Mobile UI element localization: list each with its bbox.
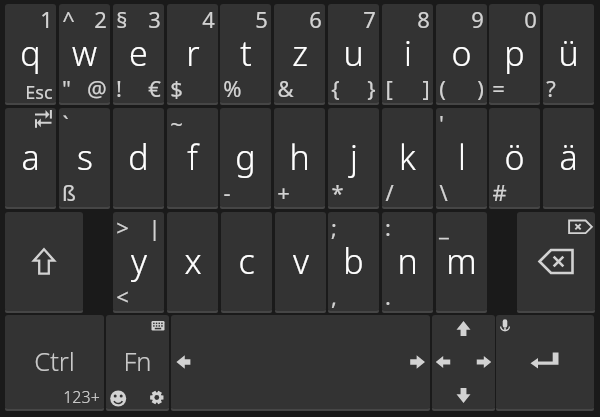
staticText: l	[458, 134, 466, 180]
button[interactable]: ü	[543, 4, 594, 103]
button[interactable]: k	[382, 108, 433, 207]
button[interactable]: Space	[171, 315, 430, 409]
button[interactable]: b	[328, 212, 379, 311]
staticText: .	[385, 281, 391, 311]
staticText: Esc	[25, 80, 53, 103]
staticText: *	[331, 177, 344, 207]
staticText: 3	[148, 4, 161, 34]
staticText: %	[223, 73, 242, 103]
staticText: -	[223, 177, 231, 207]
button[interactable]: n	[382, 212, 433, 311]
button[interactable]: s	[59, 108, 110, 207]
staticText: \	[439, 177, 448, 207]
staticText: t	[240, 30, 252, 76]
button[interactable]: y	[113, 212, 164, 311]
button[interactable]: t	[220, 4, 271, 103]
staticText: Fn	[123, 344, 152, 379]
button[interactable]: f	[167, 108, 218, 207]
staticText: q	[20, 30, 41, 76]
staticText: g	[235, 134, 256, 180]
staticText: y	[131, 238, 147, 284]
staticText: _	[439, 212, 449, 242]
staticText: x	[184, 238, 202, 284]
button[interactable]: h	[274, 108, 325, 207]
staticText: +	[277, 177, 290, 207]
staticText: 123+	[63, 386, 100, 408]
staticText: {	[331, 73, 340, 103]
staticText: h	[289, 134, 310, 180]
staticText: ;	[331, 212, 337, 242]
staticText: §	[116, 4, 128, 34]
button[interactable]: c	[221, 212, 272, 311]
staticText: ~	[170, 108, 183, 138]
staticText: w	[72, 30, 97, 76]
staticText: k	[399, 134, 416, 180]
staticText: ü	[558, 30, 579, 76]
staticText: ?	[546, 73, 556, 103]
button[interactable]: Ctrl	[5, 315, 104, 409]
button[interactable]: g	[220, 108, 271, 207]
staticText: 1	[40, 4, 53, 34]
staticText: €	[148, 73, 161, 103]
staticText: 5	[255, 4, 268, 34]
staticText: v	[293, 238, 309, 284]
button[interactable]: q	[5, 4, 56, 103]
button[interactable]: z	[274, 4, 325, 103]
staticText: b	[343, 238, 364, 284]
button[interactable]: i	[382, 4, 433, 103]
button[interactable]: e	[113, 4, 164, 103]
staticText: 9	[471, 4, 484, 34]
staticText: [	[385, 73, 393, 103]
staticText: 7	[363, 4, 376, 34]
staticText: s	[77, 134, 93, 180]
staticText: &	[277, 73, 294, 103]
staticText: o	[451, 30, 472, 76]
button[interactable]: u	[328, 4, 379, 103]
button[interactable]: ö	[489, 108, 540, 207]
button[interactable]: Arrow keys	[432, 315, 495, 409]
button[interactable]: j	[328, 108, 379, 207]
staticText: "	[62, 73, 71, 103]
staticText: <	[116, 281, 129, 311]
staticText: ,	[331, 281, 337, 311]
staticText: =	[492, 73, 505, 103]
button[interactable]: Fn	[106, 315, 169, 409]
button[interactable]: x	[167, 212, 218, 311]
button[interactable]: Shift	[5, 212, 83, 311]
staticText: r	[186, 30, 200, 76]
staticText: ä	[559, 134, 578, 180]
button[interactable]: Enter	[496, 315, 594, 409]
staticText: n	[397, 238, 418, 284]
staticText: z	[292, 30, 308, 76]
button[interactable]: p	[489, 4, 540, 103]
staticText: (	[439, 73, 446, 103]
button[interactable]: Backspace	[517, 212, 595, 311]
button[interactable]: o	[436, 4, 487, 103]
button[interactable]: d	[113, 108, 164, 207]
button[interactable]: m	[436, 212, 487, 311]
button[interactable]: v	[275, 212, 326, 311]
staticText: /	[385, 177, 394, 207]
staticText: a	[21, 134, 40, 180]
staticText: @	[87, 73, 107, 103]
staticText: p	[504, 30, 525, 76]
staticText: d	[128, 134, 149, 180]
staticText: '	[439, 108, 444, 138]
staticText: j	[350, 134, 358, 180]
staticText: }	[367, 73, 376, 103]
staticText: m	[446, 238, 477, 284]
button[interactable]: ä	[543, 108, 594, 207]
button[interactable]: l	[436, 108, 487, 207]
staticText: 8	[417, 4, 430, 34]
staticText: 4	[202, 4, 215, 34]
staticText: !	[116, 73, 122, 103]
staticText: f	[187, 134, 198, 180]
button[interactable]: r	[167, 4, 218, 103]
button[interactable]: a	[5, 108, 56, 207]
button[interactable]: w	[59, 4, 110, 103]
staticText: >	[116, 212, 129, 242]
staticText: $	[170, 73, 183, 103]
staticText: u	[343, 30, 364, 76]
staticText: ö	[504, 134, 525, 180]
staticText: 6	[309, 4, 322, 34]
